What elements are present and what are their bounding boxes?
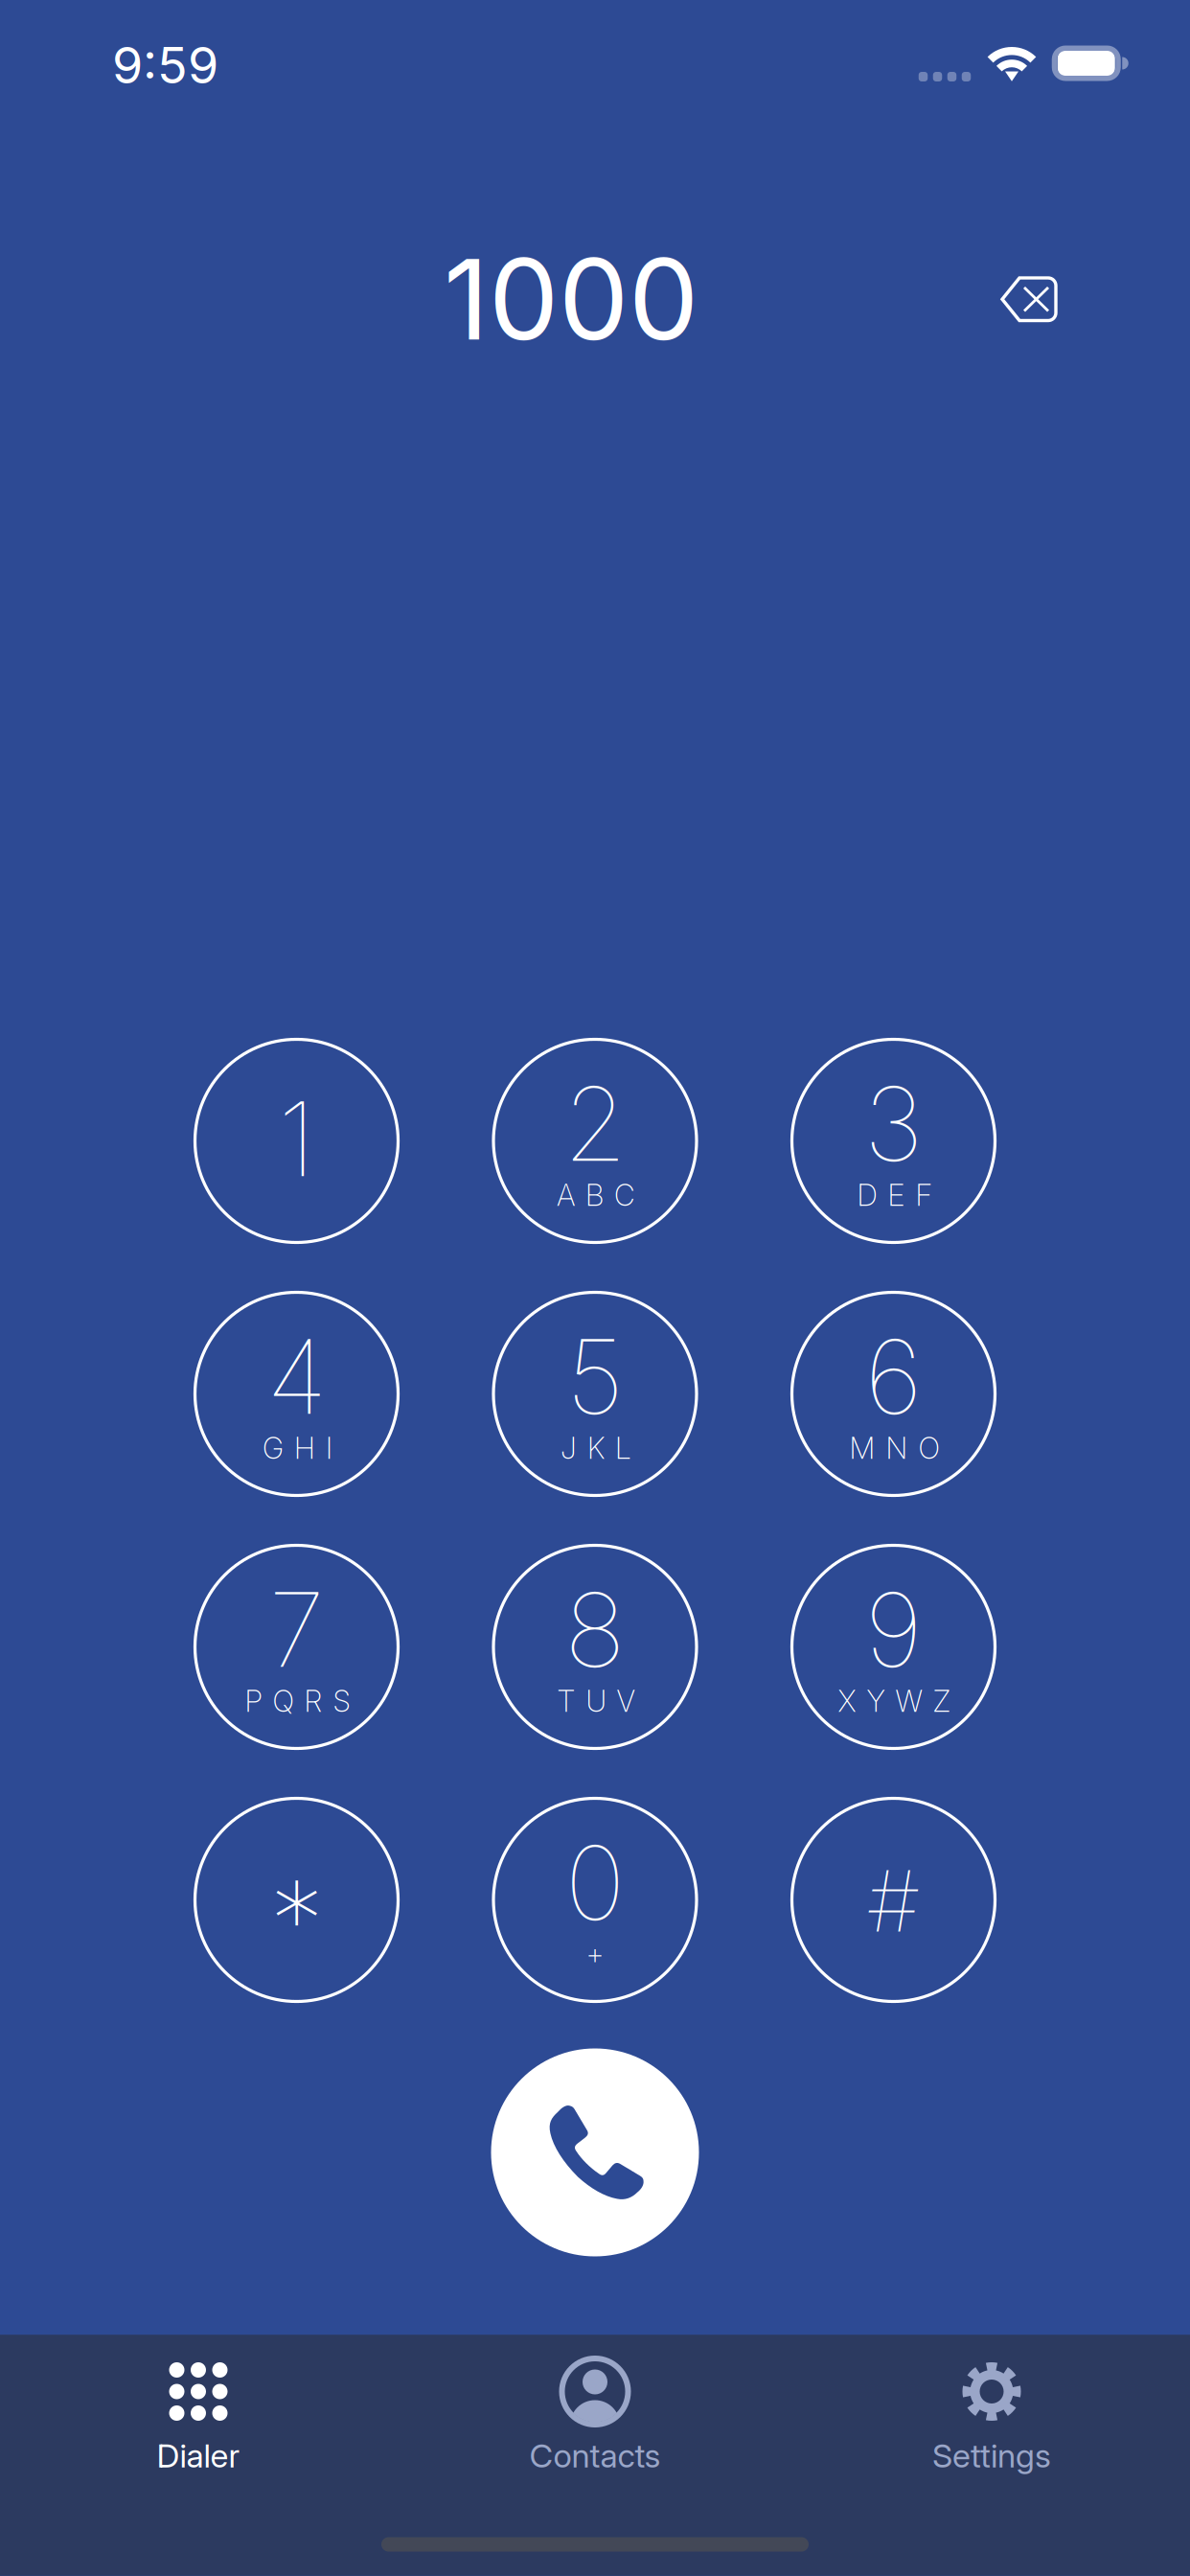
staticText: 0 [565, 1821, 625, 1945]
staticText: Dialer [157, 2436, 240, 2475]
staticText: 4 [266, 1315, 327, 1439]
staticText: 6 [865, 1315, 922, 1439]
button[interactable]: # [792, 1798, 995, 2001]
button[interactable]: 5 [493, 1292, 697, 1495]
staticText: 2 [563, 1062, 627, 1186]
button[interactable]: 8 [493, 1545, 697, 1748]
staticText: MNO [849, 1430, 939, 1466]
button[interactable]: Contacts [397, 2335, 793, 2576]
staticText: DEF [857, 1177, 932, 1213]
button[interactable]: 1 [195, 1039, 398, 1242]
staticText: GHI [263, 1430, 332, 1466]
button[interactable]: Dialer [0, 2335, 397, 2576]
button[interactable]: 2 [493, 1039, 697, 1242]
staticText: + [586, 1936, 604, 1972]
staticText: ABC [557, 1177, 635, 1213]
staticText: XYWZ [838, 1683, 951, 1719]
button[interactable]: Call [491, 2048, 699, 2256]
button[interactable]: Delete [1000, 276, 1058, 322]
staticText: 1000 [444, 232, 698, 366]
button[interactable]: 7 [195, 1545, 398, 1748]
staticText: Settings [932, 2436, 1051, 2475]
staticText: JKL [561, 1430, 631, 1466]
staticText: 3 [864, 1062, 923, 1186]
staticText: 1 [278, 1077, 315, 1201]
staticText: 5 [566, 1315, 624, 1439]
staticText: * [269, 1854, 324, 1986]
button[interactable]: 4 [195, 1292, 398, 1495]
button[interactable]: 3 [792, 1039, 995, 1242]
staticText: # [867, 1850, 920, 1952]
staticText: 9:59 [112, 35, 218, 95]
staticText: PQRS [245, 1683, 350, 1719]
button[interactable]: 6 [792, 1292, 995, 1495]
staticText: 9 [865, 1568, 922, 1692]
staticText: 8 [564, 1568, 626, 1692]
button[interactable]: 0 [493, 1798, 697, 2001]
staticText: 7 [269, 1568, 324, 1692]
button[interactable]: * [195, 1798, 398, 2001]
staticText: Contacts [529, 2436, 661, 2475]
button[interactable]: 9 [792, 1545, 995, 1748]
staticText: TUV [557, 1683, 635, 1719]
button[interactable]: Settings [793, 2335, 1190, 2576]
